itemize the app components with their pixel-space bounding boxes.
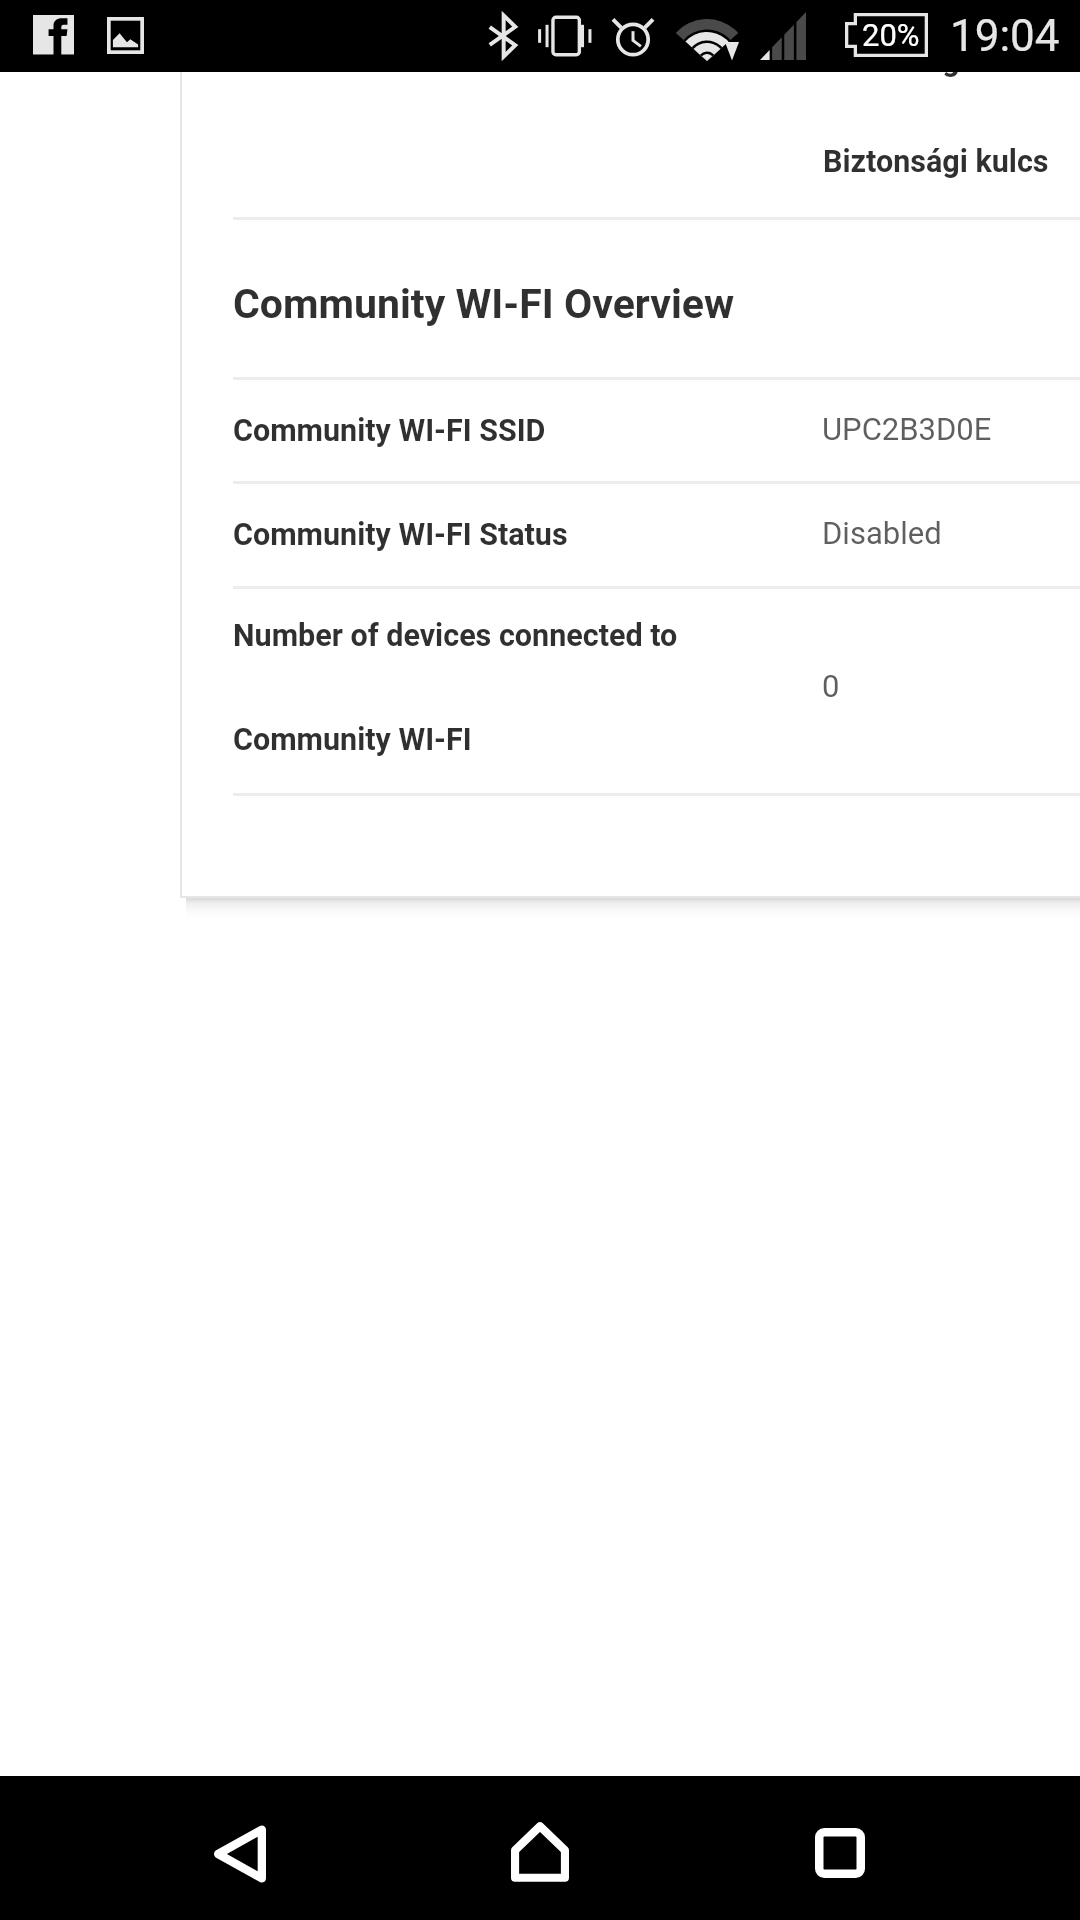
button[interactable]: Back [150, 1776, 330, 1920]
staticText: Biztonsági kulcs [823, 144, 1049, 180]
staticText: Biztonsági kulcs [823, 43, 1049, 79]
staticText: Community WI-FI SSID [233, 413, 546, 449]
button[interactable]: Recent apps [750, 1776, 930, 1920]
button[interactable]: Home [450, 1776, 630, 1920]
staticText: Disabled [822, 515, 942, 551]
staticText: UPC2B3D0E [822, 411, 992, 447]
staticText: 20% [862, 17, 920, 53]
staticText: Number of devices connected to Community… [233, 618, 678, 758]
staticText: Community WI-FI Overview [233, 280, 735, 328]
staticText: Community WI-FI Status [233, 517, 568, 553]
staticText: 19:04 [950, 10, 1060, 62]
staticText: 0 [822, 668, 840, 704]
